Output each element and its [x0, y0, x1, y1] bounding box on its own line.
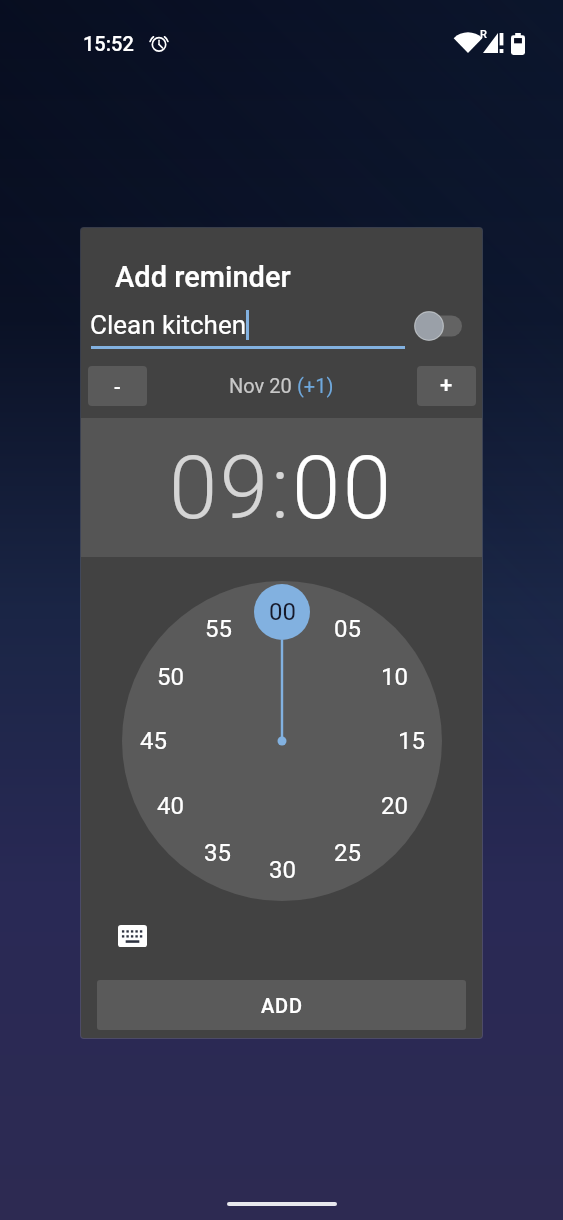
staticText: ADD: [261, 994, 303, 1017]
staticText: 40: [157, 792, 184, 820]
staticText: Clean kitchen: [90, 310, 247, 340]
staticText: 05: [334, 615, 361, 643]
staticText: +: [440, 373, 453, 399]
button[interactable]: Next day: [417, 366, 476, 406]
staticText: 15: [398, 727, 425, 755]
staticText: 00: [269, 598, 296, 626]
staticText: :: [271, 437, 292, 539]
button[interactable]: ADD: [97, 980, 466, 1030]
button[interactable]: Toggle reminder: [414, 311, 462, 341]
button[interactable]: Previous day: [88, 366, 147, 406]
staticText: 09: [169, 437, 271, 539]
staticText: (+1): [297, 374, 334, 397]
staticText: -: [114, 375, 121, 398]
staticText: 45: [140, 727, 167, 755]
staticText: 30: [269, 856, 296, 884]
staticText: 00: [292, 437, 394, 539]
staticText: 20: [381, 792, 408, 820]
staticText: Nov 20: [229, 374, 297, 397]
button[interactable]: Switch to keyboard input: [117, 923, 148, 949]
staticText: 50: [157, 663, 184, 691]
staticText: 25: [334, 839, 361, 867]
staticText: 15:52: [83, 32, 134, 55]
staticText: Add reminder: [115, 260, 291, 294]
staticText: 10: [381, 663, 408, 691]
button[interactable]: Clean kitchen: [91, 304, 405, 348]
staticText: R: [480, 28, 487, 41]
staticText: 55: [205, 615, 232, 643]
staticText: 35: [204, 839, 231, 867]
